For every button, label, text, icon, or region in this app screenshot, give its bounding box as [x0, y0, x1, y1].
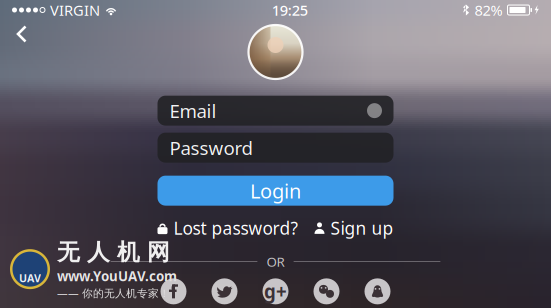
button[interactable]: Login	[157, 176, 393, 206]
button[interactable]: Sign in with QQ	[360, 274, 394, 308]
staticText: Lost password?	[173, 217, 298, 240]
staticText: 无 人 机 网	[57, 238, 170, 266]
button[interactable]: Clear text	[362, 99, 386, 123]
staticText: 82%	[474, 0, 502, 20]
button[interactable]: Sign up	[314, 215, 393, 242]
button[interactable]: Sign in with Google	[258, 274, 292, 308]
staticText: UAV	[19, 271, 41, 285]
staticText: g+	[264, 279, 287, 304]
staticText: —— 你的无人机专家！	[57, 286, 170, 300]
staticText: www.YouUAV.com	[57, 267, 177, 285]
button[interactable]: Sign in with Facebook	[156, 274, 190, 308]
staticText: OR	[266, 253, 284, 270]
button[interactable]: Lost password?	[157, 215, 298, 242]
staticText: Password	[169, 135, 252, 160]
staticText: VIRGIN	[50, 0, 100, 20]
staticText: 19:25	[272, 0, 308, 20]
staticText: Login	[250, 177, 301, 204]
staticText: Sign up	[330, 217, 393, 240]
staticText: Email	[169, 98, 216, 123]
button[interactable]: Sign in with Twitter	[207, 274, 241, 308]
button[interactable]: Sign in with WeChat	[309, 274, 343, 308]
button[interactable]: Back	[6, 20, 38, 48]
